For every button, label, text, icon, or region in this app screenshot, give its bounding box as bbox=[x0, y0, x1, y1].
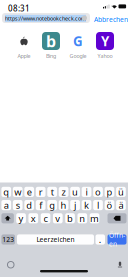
staticText: Bing bbox=[46, 52, 56, 60]
staticText: ü bbox=[118, 186, 124, 198]
staticText: j bbox=[74, 199, 76, 211]
staticText: Google bbox=[69, 52, 86, 60]
button[interactable]: g bbox=[47, 200, 57, 210]
button[interactable]: 123 bbox=[1, 234, 15, 245]
button[interactable]: G bbox=[67, 32, 89, 60]
button[interactable]: b bbox=[40, 32, 62, 60]
staticText: Yahoo bbox=[97, 52, 112, 60]
staticText: d bbox=[26, 199, 32, 211]
button[interactable]: c bbox=[41, 213, 50, 223]
button[interactable]: b bbox=[65, 213, 75, 223]
staticText: 123 bbox=[2, 235, 14, 244]
button[interactable]: n bbox=[77, 213, 87, 223]
staticText: c bbox=[44, 212, 48, 224]
button[interactable]: k bbox=[82, 200, 91, 210]
staticText: r bbox=[39, 186, 43, 198]
staticText: Öffnen bbox=[109, 231, 125, 248]
button[interactable]: i bbox=[82, 187, 91, 197]
staticText: y bbox=[18, 212, 23, 224]
button[interactable]: r bbox=[36, 187, 45, 197]
button[interactable]: ü bbox=[116, 187, 126, 197]
button[interactable]: q bbox=[1, 187, 11, 197]
staticText: Leerzeichen bbox=[36, 235, 74, 244]
button[interactable]: Clear text bbox=[82, 15, 87, 20]
staticText: a bbox=[4, 199, 9, 211]
staticText: . bbox=[99, 233, 102, 246]
staticText: p bbox=[106, 186, 112, 198]
staticText: l bbox=[97, 199, 99, 211]
staticText: f bbox=[39, 199, 42, 211]
button[interactable]: . bbox=[95, 234, 105, 245]
staticText: Apple bbox=[17, 52, 30, 60]
button[interactable] bbox=[13, 32, 35, 60]
staticText: G bbox=[73, 32, 83, 50]
button[interactable]: Öffnen bbox=[107, 234, 126, 245]
button[interactable]: Abbrechen bbox=[94, 15, 128, 24]
button[interactable]: m bbox=[90, 213, 99, 223]
staticText: k bbox=[84, 199, 89, 211]
staticText: t bbox=[51, 186, 54, 198]
button[interactable]: Delete bbox=[107, 213, 126, 223]
button[interactable]: ö bbox=[105, 200, 114, 210]
staticText: u bbox=[72, 186, 78, 198]
staticText: z bbox=[62, 186, 66, 198]
staticText: q bbox=[3, 186, 9, 198]
staticText: b bbox=[67, 212, 73, 224]
button[interactable]: l bbox=[93, 200, 103, 210]
button[interactable]: s bbox=[13, 200, 23, 210]
button[interactable]: y bbox=[16, 213, 26, 223]
button[interactable]: w bbox=[13, 187, 23, 197]
staticText: v bbox=[55, 212, 60, 224]
button[interactable]: Emoji bbox=[7, 261, 14, 268]
button[interactable]: u bbox=[70, 187, 80, 197]
button[interactable]: h bbox=[59, 200, 68, 210]
button[interactable]: t bbox=[47, 187, 57, 197]
staticText: 08:31 bbox=[8, 3, 30, 14]
staticText: h bbox=[61, 199, 67, 211]
button[interactable]: Dictation bbox=[117, 260, 122, 268]
staticText: m bbox=[90, 212, 99, 224]
button[interactable]: j bbox=[70, 200, 80, 210]
staticText: https://www.notebookcheck.com bbox=[5, 15, 86, 22]
button[interactable]: e bbox=[24, 187, 34, 197]
button[interactable]: Leerzeichen bbox=[17, 234, 94, 245]
staticText: ö bbox=[106, 199, 112, 211]
button[interactable]: Y bbox=[94, 32, 116, 60]
staticText: o bbox=[95, 186, 101, 198]
button[interactable]: ä bbox=[116, 200, 126, 210]
staticText: w bbox=[14, 186, 21, 198]
button[interactable]: f bbox=[36, 200, 45, 210]
staticText: ä bbox=[118, 199, 123, 211]
button[interactable]: v bbox=[53, 213, 63, 223]
button[interactable]: o bbox=[93, 187, 103, 197]
staticText: n bbox=[79, 212, 85, 224]
button[interactable]: p bbox=[105, 187, 114, 197]
button[interactable]: z bbox=[59, 187, 68, 197]
button[interactable]: a bbox=[1, 200, 11, 210]
button[interactable]: d bbox=[24, 200, 34, 210]
staticText: Y bbox=[101, 32, 109, 50]
staticText: s bbox=[16, 199, 20, 211]
staticText: Abbrechen bbox=[94, 15, 128, 24]
staticText: e bbox=[27, 186, 32, 198]
staticText: g bbox=[49, 199, 55, 211]
staticText: i bbox=[85, 186, 87, 198]
staticText: x bbox=[31, 212, 36, 224]
button[interactable]: x bbox=[28, 213, 38, 223]
staticText: b bbox=[46, 30, 56, 52]
button[interactable]: Shift bbox=[1, 213, 14, 223]
